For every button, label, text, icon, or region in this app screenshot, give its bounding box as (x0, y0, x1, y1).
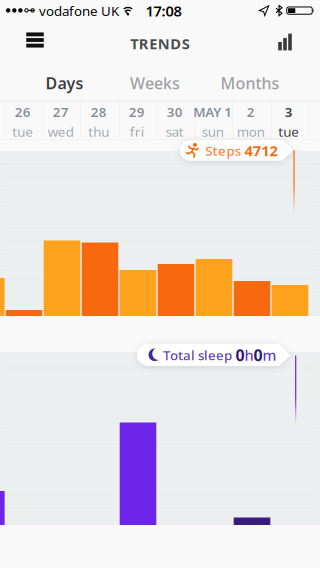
staticText: 3 (285, 103, 293, 121)
staticText: 30 (167, 103, 183, 121)
button[interactable]: Menu (16, 22, 54, 57)
staticText: MAY 1 (193, 103, 232, 121)
staticText: 28 (91, 103, 107, 121)
staticText: Steps (205, 142, 241, 159)
button[interactable]: Weeks (116, 64, 194, 102)
staticText: 27 (53, 103, 69, 121)
staticText: 29 (129, 103, 145, 121)
staticText: tue (278, 123, 299, 140)
staticText: wed (48, 123, 74, 140)
button[interactable]: Months (206, 64, 293, 102)
staticText: Days (45, 72, 83, 94)
button[interactable]: MAY 1 (194, 103, 232, 141)
staticText: m (262, 345, 276, 365)
button[interactable]: 27 (42, 103, 80, 141)
staticText: 17:08 (145, 1, 181, 21)
staticText: vodafone UK (39, 2, 119, 20)
staticText: 2 (247, 103, 255, 121)
button[interactable]: Steps (180, 140, 293, 161)
staticText: 0 (253, 344, 262, 366)
button[interactable]: Total sleep (137, 344, 290, 366)
button[interactable]: Days (31, 64, 97, 102)
staticText: Total sleep (163, 346, 232, 364)
button[interactable]: Charts (268, 24, 302, 60)
staticText: h (244, 345, 253, 365)
button[interactable]: 2 (232, 103, 270, 141)
button[interactable]: 30 (156, 103, 194, 141)
staticText: sat (166, 123, 184, 140)
staticText: fri (130, 123, 144, 140)
staticText: sun (202, 123, 224, 140)
staticText: 0 (235, 344, 244, 366)
button[interactable]: 29 (118, 103, 156, 141)
staticText: 26 (15, 103, 31, 121)
staticText: Weeks (130, 72, 180, 94)
staticText: 4712 (244, 141, 278, 160)
staticText: thu (88, 123, 109, 140)
button[interactable]: 26 (4, 103, 42, 141)
staticText: Months (220, 72, 279, 94)
button[interactable]: 3 (270, 103, 308, 141)
button[interactable]: 28 (80, 103, 118, 141)
staticText: TRENDS (130, 34, 190, 53)
staticText: tue (12, 123, 33, 140)
staticText: mon (237, 123, 265, 140)
